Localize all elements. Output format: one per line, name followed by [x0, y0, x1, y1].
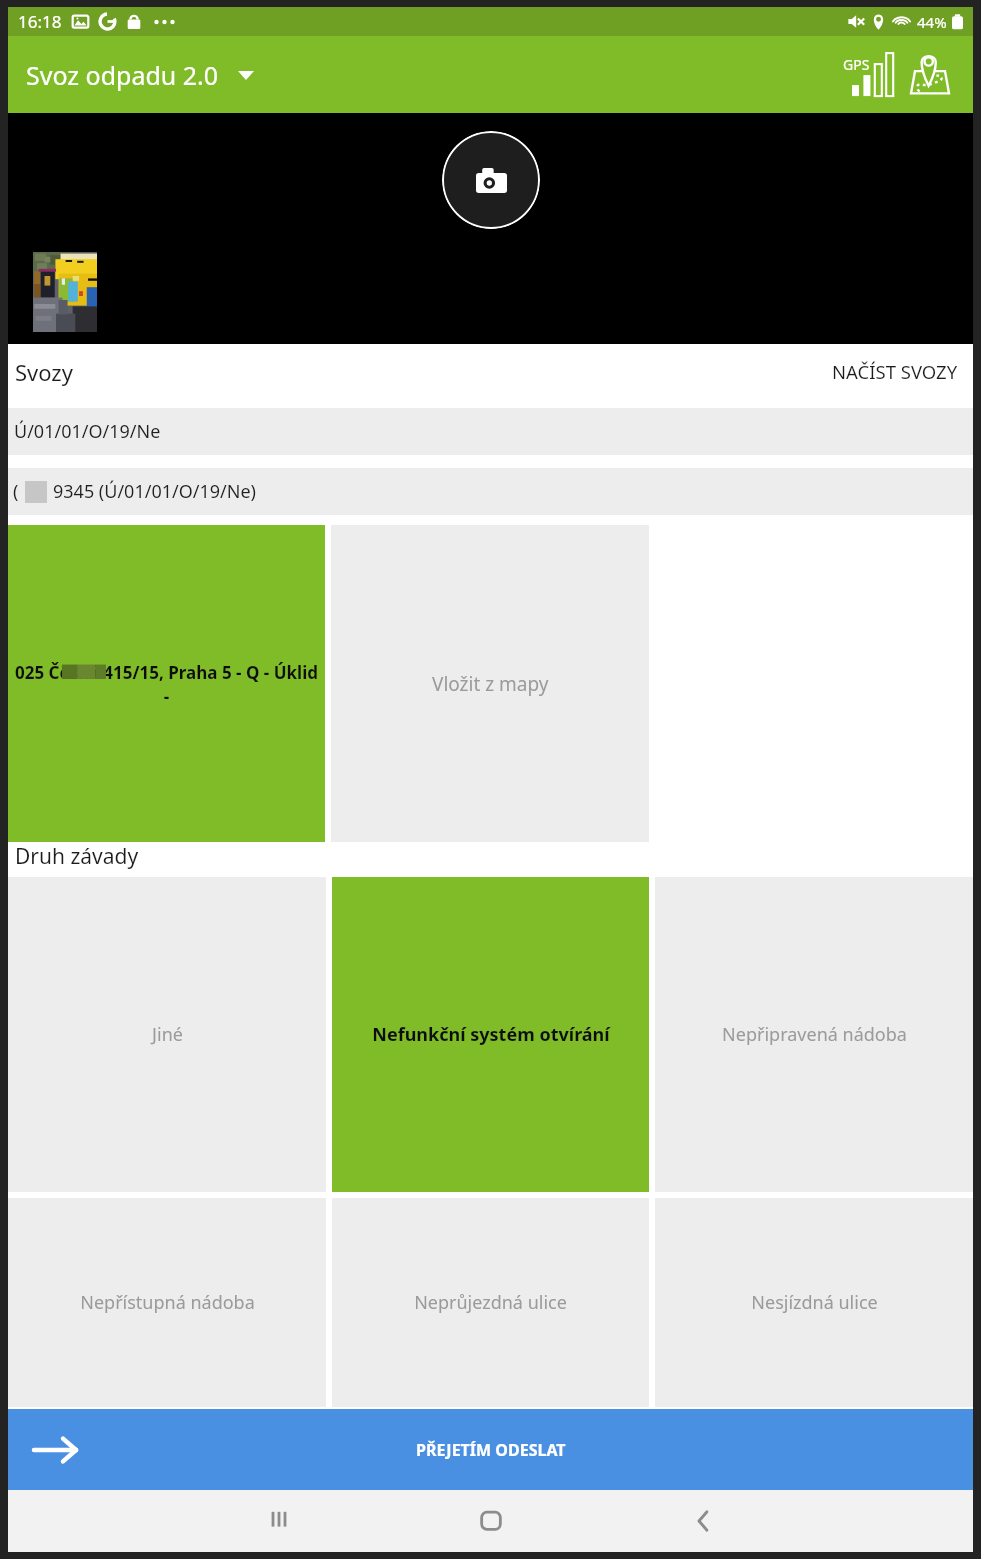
- button[interactable]: 025 Česká 415/15, Praha 5 - Q - Úklid -: [8, 525, 325, 842]
- staticText: Ú/01/01/O/19/Ne: [14, 419, 161, 444]
- button[interactable]: Ú/01/01/O/19/Ne: [8, 408, 973, 455]
- button[interactable]: (: [8, 468, 973, 515]
- button[interactable]: Nefunkční systém otvírání: [332, 877, 649, 1192]
- staticText: 44%: [917, 12, 947, 32]
- staticText: 9345 (Ú/01/01/O/19/Ne): [53, 479, 256, 504]
- staticText: 16:18: [18, 10, 62, 33]
- button[interactable]: Vložit z mapy: [331, 525, 649, 842]
- staticText: Druh závady: [15, 842, 139, 869]
- button[interactable]: Nepřístupná nádoba: [8, 1198, 326, 1407]
- button[interactable]: Nesjízdná ulice: [655, 1198, 973, 1407]
- button[interactable]: Neprůjezdná ulice: [332, 1198, 649, 1407]
- staticText: Nepřipravená nádoba: [722, 1022, 907, 1047]
- button[interactable]: Map: [910, 52, 973, 102]
- button[interactable]: Back: [597, 1490, 809, 1552]
- button[interactable]: Nepřipravená nádoba: [655, 877, 973, 1192]
- staticText: Jiné: [152, 1022, 183, 1047]
- staticText: Svoz odpadu 2.0: [26, 58, 219, 92]
- button[interactable]: NAČÍST SVOZY: [820, 349, 973, 404]
- staticText: Neprůjezdná ulice: [414, 1290, 567, 1315]
- staticText: Vložit z mapy: [432, 671, 549, 697]
- button[interactable]: Home: [385, 1490, 597, 1552]
- staticText: Nesjízdná ulice: [751, 1290, 878, 1315]
- staticText: GPS: [843, 55, 870, 74]
- staticText: NAČÍST SVOZY: [832, 359, 958, 384]
- button[interactable]: Photo thumbnail: [33, 252, 97, 332]
- button[interactable]: Recent apps: [172, 1490, 385, 1552]
- button[interactable]: GPS signal strength: [830, 48, 910, 106]
- staticText: Svozy: [15, 357, 73, 387]
- button[interactable]: Take photo: [442, 131, 540, 229]
- button[interactable]: PŘEJETÍM ODESLAT: [8, 1409, 973, 1490]
- staticText: (: [13, 479, 19, 504]
- staticText: Nepřístupná nádoba: [80, 1290, 255, 1315]
- staticText: PŘEJETÍM ODESLAT: [416, 1439, 566, 1461]
- staticText: Nefunkční systém otvírání: [372, 1022, 610, 1047]
- staticText: 025 Česká 415/15, Praha 5 - Q - Úklid -: [9, 661, 324, 708]
- button[interactable]: Svoz odpadu 2.0: [8, 48, 268, 102]
